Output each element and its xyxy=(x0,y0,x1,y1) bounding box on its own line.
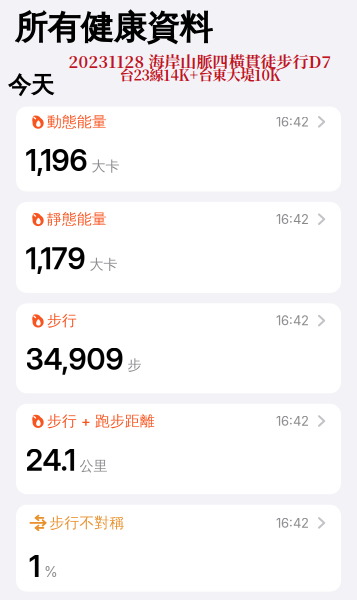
staticText: 步行不對稱 xyxy=(49,514,124,532)
staticText: 台23線14K+台東大堤10K xyxy=(119,64,280,85)
button[interactable]: 動態能量 xyxy=(16,106,341,191)
staticText: 公里 xyxy=(79,457,107,475)
staticText: 1,196 xyxy=(25,142,87,178)
staticText: 24.1 xyxy=(25,442,75,478)
staticText: % xyxy=(44,563,58,580)
staticText: 大卡 xyxy=(89,256,117,273)
button[interactable]: 步行 xyxy=(16,303,341,393)
staticText: 16:42 xyxy=(276,211,309,227)
staticText: 今天 xyxy=(8,71,54,100)
staticText: 34,909 xyxy=(25,341,123,377)
button[interactable]: 步行 + 跑步距離 xyxy=(16,404,341,494)
button[interactable]: 靜態能量 xyxy=(16,202,341,293)
staticText: 1 xyxy=(29,548,40,584)
staticText: 所有健康資料 xyxy=(14,7,212,49)
staticText: 動態能量 xyxy=(47,112,107,131)
staticText: 16:42 xyxy=(276,313,309,328)
staticText: 大卡 xyxy=(91,157,119,175)
staticText: 16:42 xyxy=(276,515,309,531)
button[interactable]: 步行不對稱 xyxy=(16,505,341,592)
staticText: 步行 xyxy=(47,311,77,330)
staticText: 20231128 海岸山脈四橫貫徒步行D7 xyxy=(68,49,331,73)
staticText: 步行 + 跑步距離 xyxy=(47,412,155,430)
staticText: 靜態能量 xyxy=(47,210,107,228)
staticText: 1,179 xyxy=(25,241,85,276)
staticText: 步 xyxy=(127,356,141,374)
staticText: 16:42 xyxy=(276,114,309,130)
staticText: 16:42 xyxy=(276,413,309,429)
